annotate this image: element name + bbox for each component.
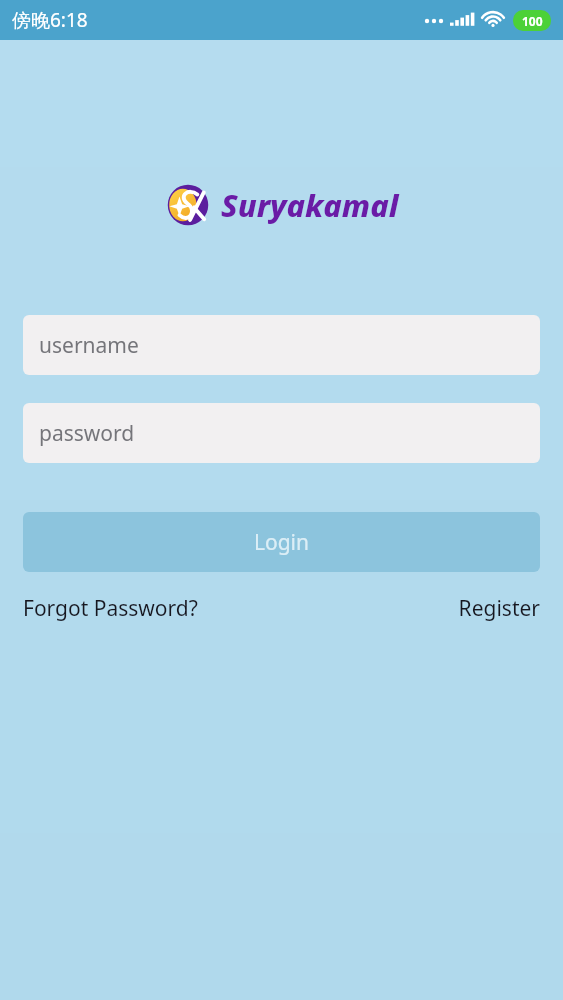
staticText: Forgot Password? — [23, 594, 198, 623]
staticText: username — [39, 331, 139, 360]
staticText: Login — [254, 528, 310, 557]
staticText: 傍晚6:18 — [12, 7, 88, 33]
button[interactable]: Forgot Password? — [23, 590, 198, 627]
button[interactable]: Login — [23, 512, 540, 572]
button[interactable]: password — [23, 403, 540, 463]
staticText: password — [39, 419, 135, 448]
staticText: Suryakamal — [221, 184, 399, 226]
button[interactable]: username — [23, 315, 540, 375]
staticText: 100 — [522, 13, 543, 29]
button[interactable]: Register — [458, 590, 540, 627]
staticText: Register — [458, 594, 540, 623]
